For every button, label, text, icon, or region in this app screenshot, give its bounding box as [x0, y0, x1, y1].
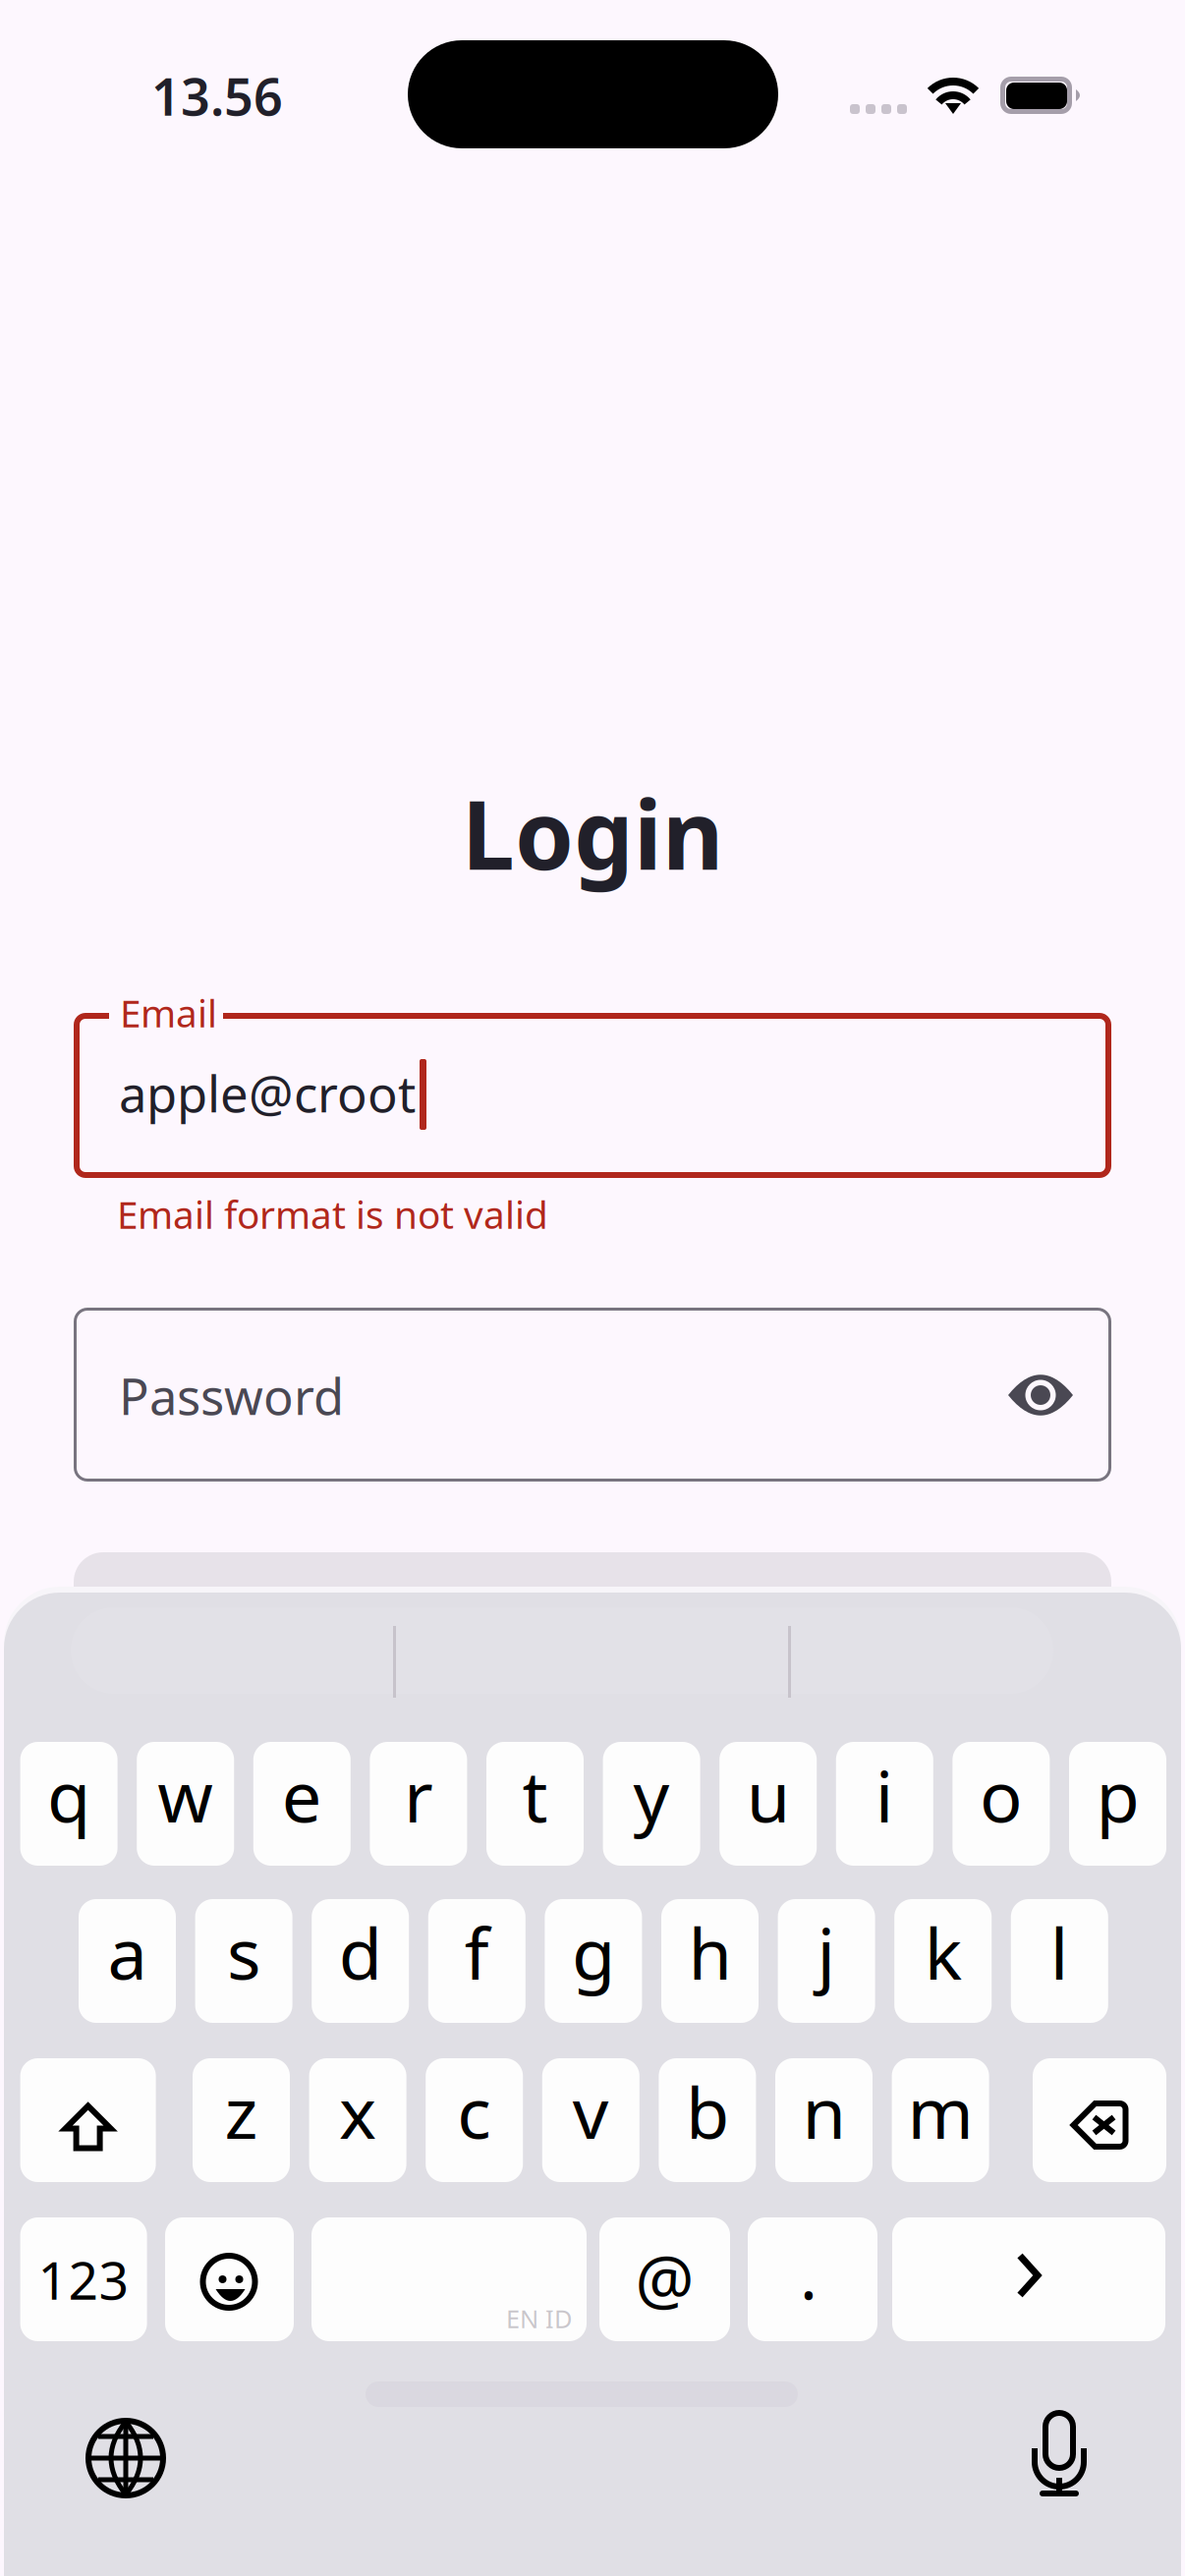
button[interactable]: p — [1069, 1742, 1166, 1866]
staticText: u — [746, 1748, 790, 1842]
staticText: Email format is not valid — [117, 1189, 548, 1239]
staticText: c — [457, 2064, 491, 2158]
staticText: v — [573, 2064, 609, 2158]
button[interactable]: j — [778, 1899, 875, 2023]
button[interactable]: x — [309, 2058, 406, 2182]
staticText: r — [404, 1748, 433, 1842]
staticText: x — [339, 2064, 376, 2158]
button[interactable]: v — [542, 2058, 639, 2182]
staticText: . — [800, 2231, 818, 2318]
button[interactable]: b — [659, 2058, 756, 2182]
button[interactable]: Next keyboard — [88, 2421, 165, 2497]
staticText: apple@croot — [119, 1060, 416, 1126]
staticText: g — [572, 1905, 615, 1999]
button[interactable]: c — [426, 2058, 523, 2182]
button[interactable]: f — [428, 1899, 525, 2023]
button[interactable]: z — [193, 2058, 290, 2182]
button[interactable]: Space — [311, 2217, 587, 2341]
button[interactable]: k — [894, 1899, 992, 2023]
button[interactable]: l — [1011, 1899, 1108, 2023]
staticText: EN ID — [506, 2302, 572, 2335]
staticText: @ — [635, 2235, 694, 2322]
staticText: a — [108, 1905, 147, 1999]
button[interactable]: 123 — [20, 2217, 147, 2341]
button[interactable]: h — [661, 1899, 759, 2023]
staticText: p — [1096, 1748, 1139, 1842]
staticText: i — [875, 1748, 894, 1842]
button[interactable]: s — [195, 1899, 292, 2023]
staticText: k — [924, 1905, 962, 1999]
button[interactable]: Show password — [1007, 1371, 1074, 1420]
button[interactable]: Dictate — [1032, 2413, 1087, 2497]
button[interactable]: r — [370, 1742, 467, 1866]
button[interactable]: w — [137, 1742, 234, 1866]
button[interactable]: i — [836, 1742, 933, 1866]
button[interactable]: m — [892, 2058, 989, 2182]
button[interactable]: g — [545, 1899, 642, 2023]
staticText: o — [980, 1748, 1023, 1842]
staticText: t — [522, 1748, 548, 1842]
staticText: y — [633, 1748, 670, 1842]
button[interactable]: o — [953, 1742, 1050, 1866]
staticText: m — [908, 2064, 973, 2158]
button[interactable]: y — [603, 1742, 700, 1866]
button[interactable]: @ — [599, 2217, 730, 2341]
staticText: h — [688, 1905, 732, 1999]
button[interactable]: q — [20, 1742, 118, 1866]
button[interactable]: u — [719, 1742, 817, 1866]
button[interactable]: t — [486, 1742, 584, 1866]
staticText: 123 — [38, 2245, 129, 2314]
button[interactable]: Delete — [1033, 2058, 1166, 2182]
staticText: n — [802, 2064, 846, 2158]
staticText: l — [1050, 1905, 1069, 1999]
button[interactable]: n — [775, 2058, 873, 2182]
button[interactable]: . — [748, 2217, 877, 2341]
staticText: d — [339, 1905, 382, 1999]
staticText: q — [47, 1748, 90, 1842]
staticText: j — [817, 1905, 836, 1999]
staticText: 13.56 — [151, 62, 283, 130]
button[interactable]: d — [312, 1899, 409, 2023]
staticText: Email — [120, 987, 217, 1038]
button[interactable]: e — [253, 1742, 351, 1866]
staticText: e — [282, 1748, 322, 1842]
button[interactable]: a — [79, 1899, 176, 2023]
staticText: s — [227, 1905, 260, 1999]
staticText: Password — [119, 1363, 344, 1429]
button[interactable]: Shift — [20, 2058, 156, 2182]
staticText: w — [157, 1748, 213, 1842]
staticText: b — [686, 2064, 729, 2158]
button[interactable]: Emoji — [165, 2217, 294, 2341]
staticText: Login — [462, 771, 723, 896]
staticText: z — [225, 2064, 258, 2158]
staticText: f — [465, 1905, 489, 1999]
button[interactable]: Go — [892, 2217, 1165, 2341]
